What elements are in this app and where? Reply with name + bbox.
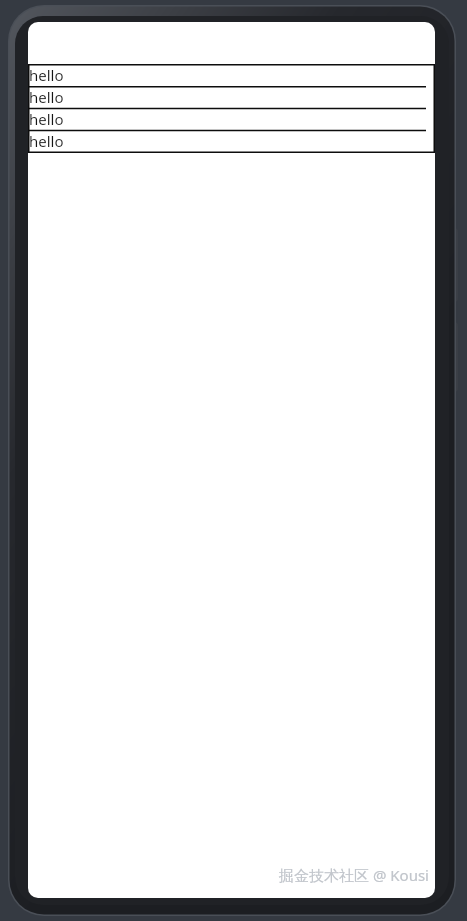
staticText: hello: [29, 87, 64, 107]
button[interactable]: hello: [28, 86, 435, 108]
button[interactable]: hello: [28, 130, 435, 152]
button[interactable]: hello: [28, 108, 435, 130]
staticText: hello: [29, 65, 64, 85]
staticText: 掘金技术社区 @ Kousi: [279, 865, 429, 885]
staticText: hello: [29, 109, 64, 129]
button[interactable]: hello: [28, 64, 435, 86]
staticText: hello: [29, 131, 64, 151]
